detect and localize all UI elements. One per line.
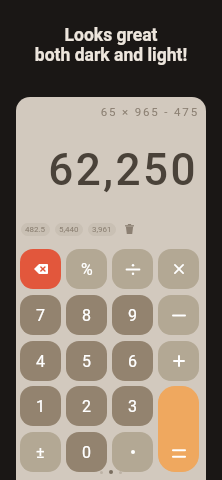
staticText: 3,961 <box>92 225 112 234</box>
staticText: 1 <box>36 397 45 416</box>
button[interactable]: Multiply <box>158 249 199 289</box>
staticText: 9 <box>128 306 137 325</box>
button[interactable]: 1 <box>20 386 61 426</box>
button[interactable]: Plus minus <box>20 432 61 472</box>
staticText: 6 <box>128 352 137 371</box>
button[interactable]: 5 <box>66 341 107 381</box>
staticText: 65 × 965 - 475 <box>0 105 199 118</box>
staticText: 62,250 <box>0 144 198 196</box>
staticText: 0 <box>82 443 91 462</box>
staticText: 8 <box>82 306 91 325</box>
staticText: 2 <box>82 397 91 416</box>
button[interactable]: Plus <box>158 341 199 381</box>
button[interactable]: Divide <box>112 249 153 289</box>
staticText: 5 <box>82 352 91 371</box>
button[interactable]: 4 <box>20 341 61 381</box>
staticText: ± <box>36 443 45 462</box>
button[interactable]: 5,440 <box>55 223 83 236</box>
button[interactable]: Clear history <box>121 221 137 237</box>
button[interactable]: 3 <box>112 386 153 426</box>
button[interactable]: 3,961 <box>88 223 116 236</box>
button[interactable]: 2 <box>66 386 107 426</box>
staticText: Looks great both dark and light! <box>0 25 222 65</box>
button[interactable]: 0 <box>66 432 107 472</box>
staticText: % <box>81 260 93 279</box>
button[interactable]: Percent <box>66 249 107 289</box>
button[interactable]: Minus <box>158 295 199 335</box>
button[interactable]: 7 <box>20 295 61 335</box>
button[interactable]: 6 <box>112 341 153 381</box>
staticText: 7 <box>36 306 45 325</box>
staticText: 4 <box>36 352 45 371</box>
button[interactable]: Backspace <box>20 249 61 289</box>
staticText: 482.5 <box>25 225 46 234</box>
staticText: 5,440 <box>59 225 79 234</box>
button[interactable]: 482.5 <box>21 223 50 236</box>
staticText: 3 <box>128 397 137 416</box>
button[interactable]: 9 <box>112 295 153 335</box>
button[interactable]: Decimal point <box>112 432 153 472</box>
button[interactable]: 8 <box>66 295 107 335</box>
button[interactable]: Equals <box>158 386 199 472</box>
